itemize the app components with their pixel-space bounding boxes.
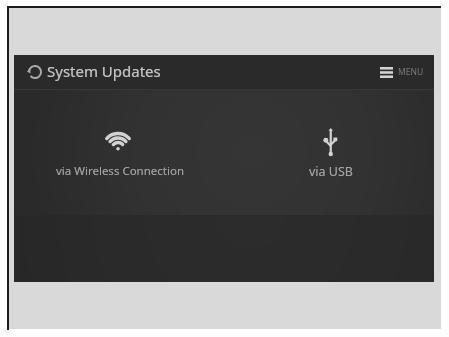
staticText: via USB bbox=[309, 163, 353, 180]
button[interactable]: Menu bbox=[376, 60, 428, 84]
staticText: via Wireless Connection bbox=[56, 163, 185, 179]
staticText: System Updates bbox=[47, 61, 161, 81]
staticText: MENU bbox=[398, 66, 424, 78]
button[interactable]: via USB bbox=[224, 90, 434, 215]
button[interactable]: via Wireless Connection bbox=[14, 90, 224, 215]
button[interactable]: Refresh bbox=[20, 57, 50, 87]
